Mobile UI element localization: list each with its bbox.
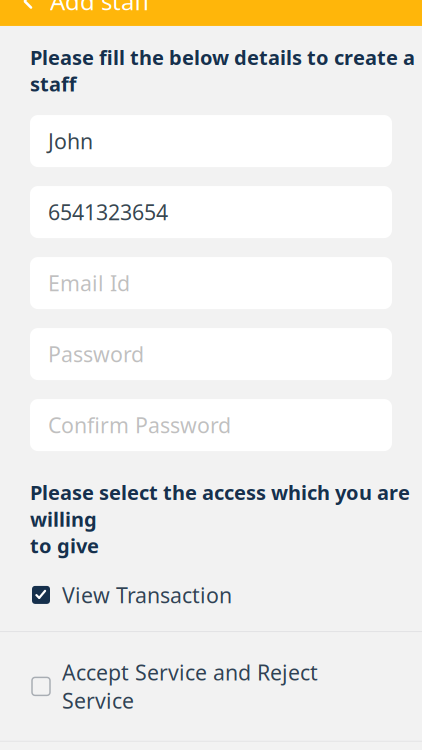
staticText: Please fill the below details to create … <box>30 44 415 97</box>
staticText: Confirm Password <box>48 411 231 439</box>
staticText: Accept Service and Reject Service <box>62 658 318 715</box>
staticText: View Transaction <box>62 581 232 609</box>
button[interactable]: Accept Service and Reject Service <box>0 658 422 715</box>
staticText: Password <box>48 340 144 368</box>
staticText: John <box>48 127 93 155</box>
staticText: Email Id <box>48 269 130 297</box>
staticText: 6541323654 <box>48 198 168 226</box>
button[interactable]: View Transaction <box>0 581 422 609</box>
staticText: Please select the access which you are w… <box>30 479 410 559</box>
staticText: Add staff <box>50 0 151 17</box>
button[interactable]: Back <box>6 0 50 26</box>
